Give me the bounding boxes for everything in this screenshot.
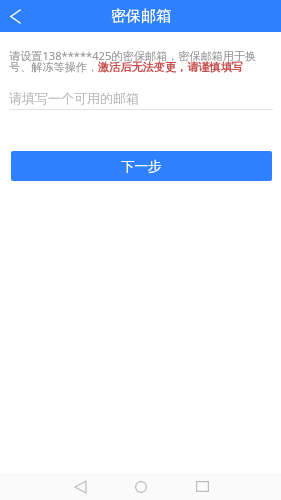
staticText: 请设置138*****425的密保邮箱，密保邮箱用于换号、解冻等操作，激活后无法… (9, 48, 273, 75)
staticText: 请填写一个可用的邮箱 (9, 90, 139, 106)
staticText: 密保邮箱 (111, 7, 171, 26)
button[interactable]: 请填写一个可用的邮箱 (9, 87, 273, 109)
staticText: 下一步 (121, 158, 162, 175)
button[interactable]: Back (66, 473, 94, 500)
button[interactable]: Recents (188, 473, 216, 500)
button[interactable]: 下一步 (11, 151, 272, 181)
button[interactable]: Back (0, 0, 30, 32)
button[interactable]: Home (127, 473, 155, 500)
